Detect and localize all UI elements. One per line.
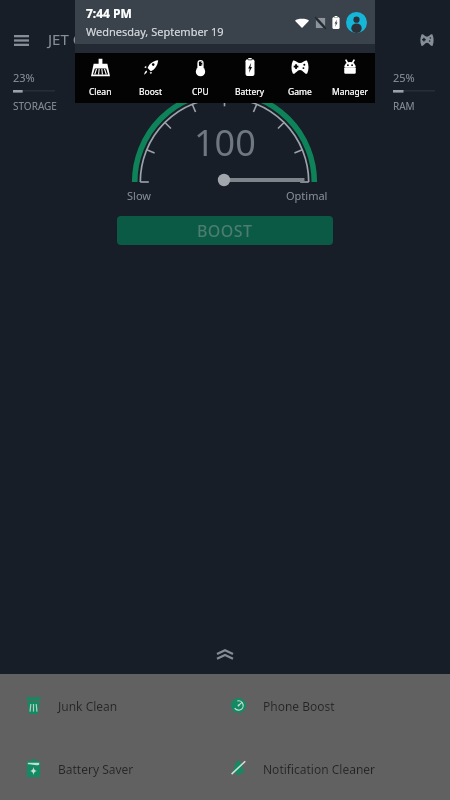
button[interactable]: Junk Clean [0,674,225,737]
staticText: Clean [89,86,112,98]
button[interactable]: CPU [175,53,225,103]
staticText: BOOST [197,220,253,242]
button[interactable]: Expand panel [0,634,450,674]
button[interactable]: Menu [5,25,38,55]
staticText: 23% [13,70,35,85]
button[interactable]: Phone Boost [225,674,450,737]
staticText: Junk Clean [58,698,118,714]
staticText: 100 [194,118,256,167]
button[interactable]: Battery Saver [0,737,225,800]
button[interactable]: Game booster [411,24,443,56]
staticText: Phone Boost [263,698,335,714]
staticText: Boost [139,86,162,98]
button[interactable]: Clean [75,53,125,103]
staticText: Slow [127,188,151,203]
button[interactable]: User profile [346,12,367,33]
button[interactable]: Boost [125,53,175,103]
staticText: STORAGE [13,99,57,113]
staticText: Wednesday, September 19 [86,24,224,39]
staticText: RAM [393,99,415,113]
staticText: Notification Cleaner [263,761,376,777]
staticText: JET CLEANER [48,29,138,49]
button[interactable]: Battery [225,53,275,103]
button[interactable]: BOOST [117,216,333,245]
staticText: 25% [393,70,415,85]
button[interactable]: Game [275,53,325,103]
staticText: 7:44 PM [86,5,132,21]
button[interactable]: Manager [325,53,375,103]
staticText: CPU [192,86,209,98]
staticText: Battery [235,86,265,98]
staticText: Manager [332,86,369,98]
button[interactable]: Notification Cleaner [225,737,450,800]
staticText: Optimal [286,188,328,203]
staticText: Battery Saver [58,761,134,777]
staticText: Game [288,86,312,98]
